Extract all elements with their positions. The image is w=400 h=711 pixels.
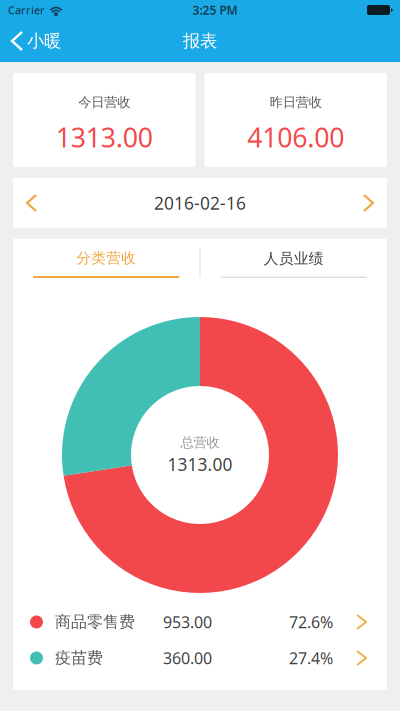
button[interactable]: 今日营收 — [13, 73, 195, 167]
staticText: 1313.00 — [167, 453, 232, 476]
staticText: 今日营收 — [78, 94, 130, 110]
staticText: 分类营收 — [76, 249, 136, 267]
staticText: 27.4% — [289, 647, 333, 669]
staticText: 360.00 — [163, 647, 212, 669]
staticText: 4106.00 — [247, 119, 344, 155]
staticText: 昨日营收 — [270, 94, 322, 110]
button[interactable]: 分类营收 — [13, 239, 199, 287]
button[interactable]: Next day — [350, 178, 387, 228]
staticText: 小暖 — [27, 30, 61, 52]
staticText: 报表 — [183, 30, 217, 52]
staticText: 2016-02-16 — [154, 191, 246, 214]
staticText: 953.00 — [163, 611, 212, 633]
button[interactable]: 小暖 — [0, 20, 73, 62]
button[interactable]: 疫苗费 — [13, 640, 387, 676]
staticText: Carrier — [8, 3, 45, 17]
staticText: 1313.00 — [56, 119, 153, 155]
button[interactable]: 昨日营收 — [204, 73, 387, 167]
staticText: 商品零售费 — [55, 612, 135, 632]
staticText: 疫苗费 — [55, 648, 103, 668]
button[interactable]: Previous day — [13, 178, 50, 228]
staticText: 人员业绩 — [264, 249, 324, 267]
staticText: 总营收 — [180, 434, 219, 451]
button[interactable]: 人员业绩 — [200, 239, 387, 287]
staticText: 3:25 PM — [192, 2, 237, 18]
staticText: 72.6% — [289, 611, 333, 633]
button[interactable]: 商品零售费 — [13, 604, 387, 640]
